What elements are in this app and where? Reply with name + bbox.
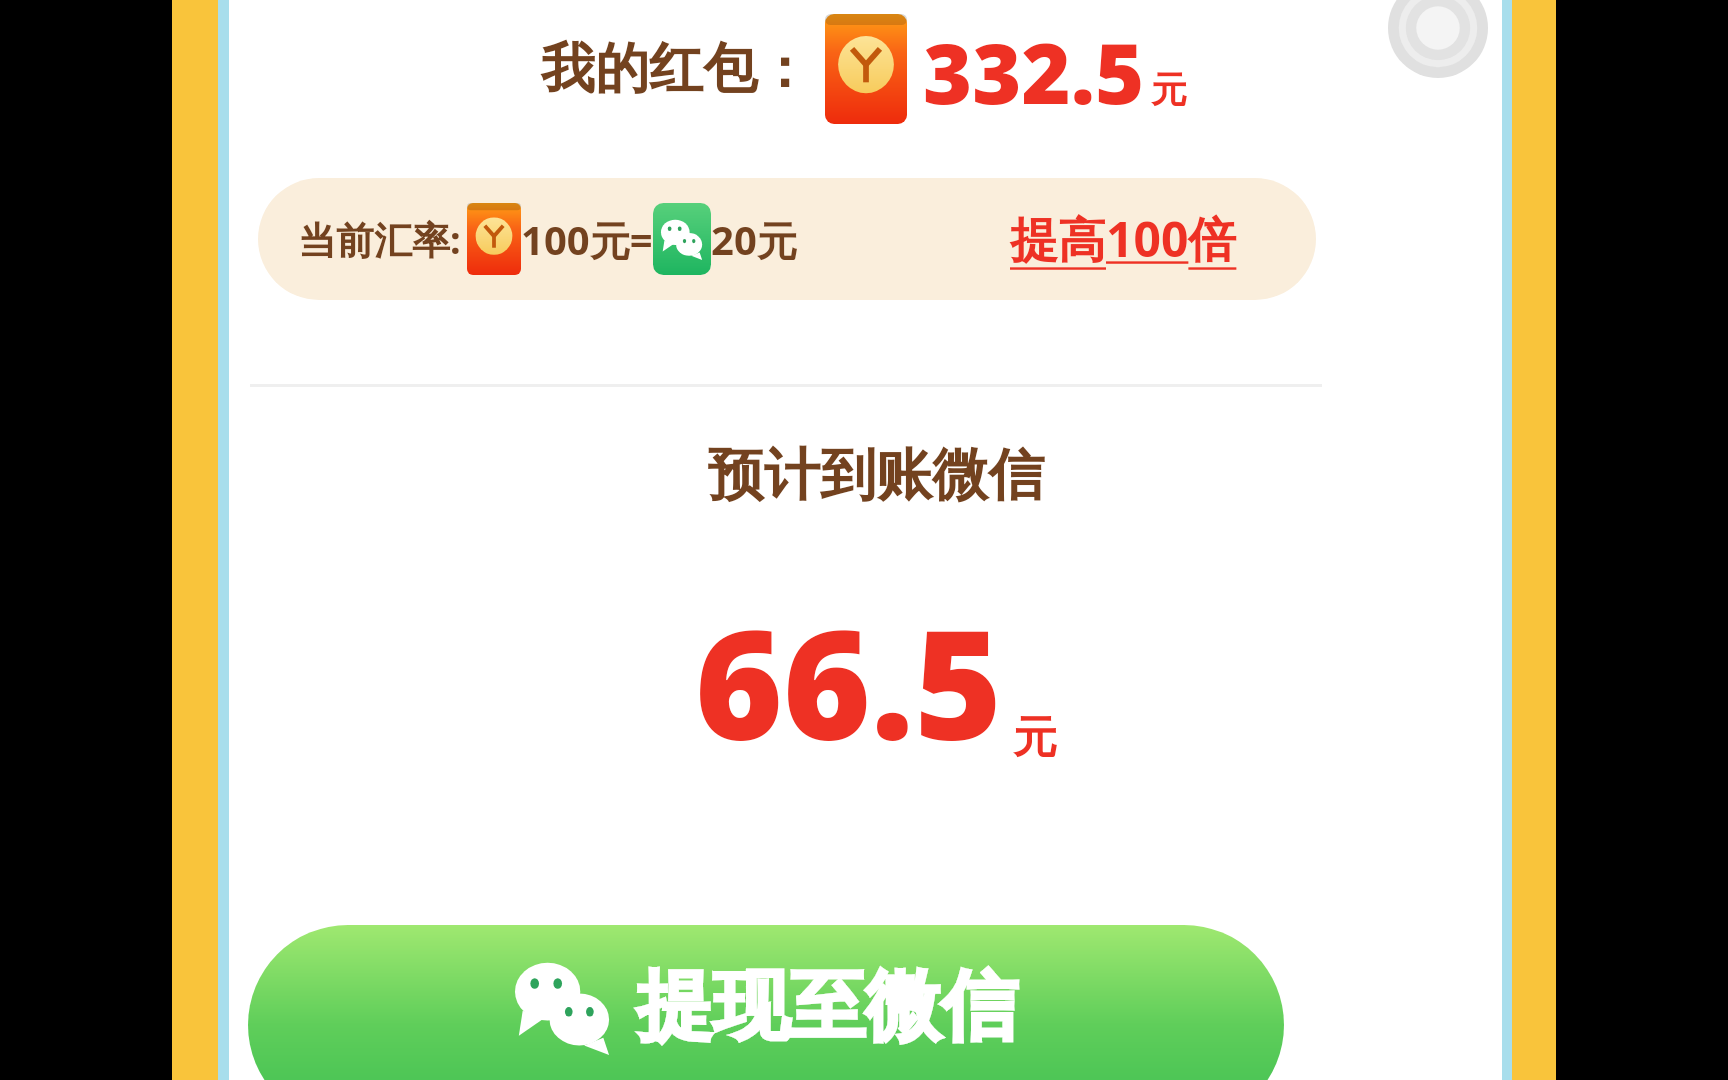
staticText: 332.5 [923,14,1145,124]
staticText: 提现至微信 [637,959,1017,1055]
button[interactable]: 提高100倍 [1010,178,1237,300]
button[interactable]: 提现至微信 [248,925,1284,1080]
staticText: 100元= [521,212,653,267]
staticText: 元 [1151,67,1187,112]
staticText: 66.5 [695,579,1003,783]
staticText: 提高100倍 [1010,206,1237,272]
staticText: 元 [1013,710,1057,765]
staticText: 当前汇率: [298,213,461,265]
button[interactable]: Record [1388,0,1488,78]
staticText: 我的红包： [541,35,811,103]
staticText: 20元 [711,212,797,267]
staticText: 预计到账微信 [708,440,1044,511]
